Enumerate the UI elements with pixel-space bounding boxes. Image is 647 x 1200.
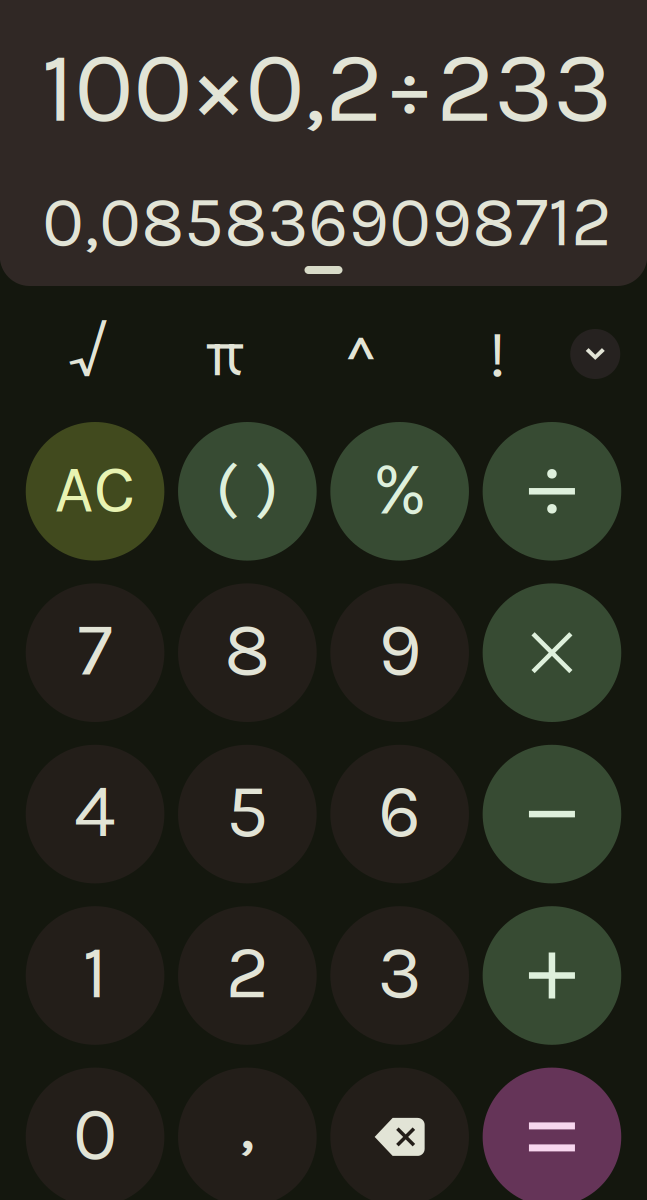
staticText: AC <box>54 449 135 528</box>
button[interactable]: 5 <box>178 745 317 883</box>
button[interactable]: Multiply <box>483 583 621 722</box>
button[interactable]: , <box>178 1068 317 1200</box>
button[interactable]: ^ <box>293 314 429 394</box>
staticText: ( ) <box>215 450 279 528</box>
staticText: ! <box>488 315 507 393</box>
button[interactable]: ( ) <box>178 422 317 561</box>
staticText: 7 <box>77 606 112 693</box>
button[interactable]: 3 <box>330 906 469 1045</box>
button[interactable]: 9 <box>330 583 469 722</box>
staticText: 100×0,2÷233 <box>41 29 612 146</box>
staticText: √ <box>69 315 107 393</box>
button[interactable]: 0 <box>26 1068 164 1200</box>
staticText: % <box>373 445 427 532</box>
button[interactable]: 1 <box>26 906 164 1045</box>
button[interactable]: AC <box>26 422 164 561</box>
button[interactable]: 2 <box>178 906 317 1045</box>
staticText: π <box>205 317 244 391</box>
staticText: 2 <box>226 929 269 1016</box>
staticText: 9 <box>378 606 421 693</box>
button[interactable]: Minus <box>483 745 621 883</box>
button[interactable]: More functions <box>570 329 620 379</box>
button[interactable]: % <box>330 422 469 561</box>
button[interactable]: √ <box>20 314 156 394</box>
staticText: , <box>239 1079 255 1167</box>
staticText: 5 <box>226 767 268 855</box>
button[interactable]: 6 <box>330 745 469 883</box>
button[interactable]: Divide <box>483 422 621 561</box>
staticText: 0 <box>73 1090 117 1178</box>
button[interactable]: 4 <box>26 745 164 883</box>
staticText: 4 <box>74 767 116 855</box>
staticText: 1 <box>82 929 107 1016</box>
button[interactable]: Equals <box>483 1068 621 1200</box>
button[interactable]: 7 <box>26 583 164 722</box>
staticText: 0,0858369098712 <box>42 181 612 263</box>
staticText: 6 <box>378 767 421 855</box>
button[interactable]: 8 <box>178 583 317 722</box>
button[interactable]: π <box>156 314 293 394</box>
staticText: ^ <box>344 317 378 391</box>
button[interactable]: Plus <box>483 906 621 1045</box>
staticText: 3 <box>378 929 422 1016</box>
button[interactable]: ! <box>429 314 566 394</box>
staticText: 8 <box>224 606 270 693</box>
button[interactable]: Backspace <box>330 1068 469 1200</box>
